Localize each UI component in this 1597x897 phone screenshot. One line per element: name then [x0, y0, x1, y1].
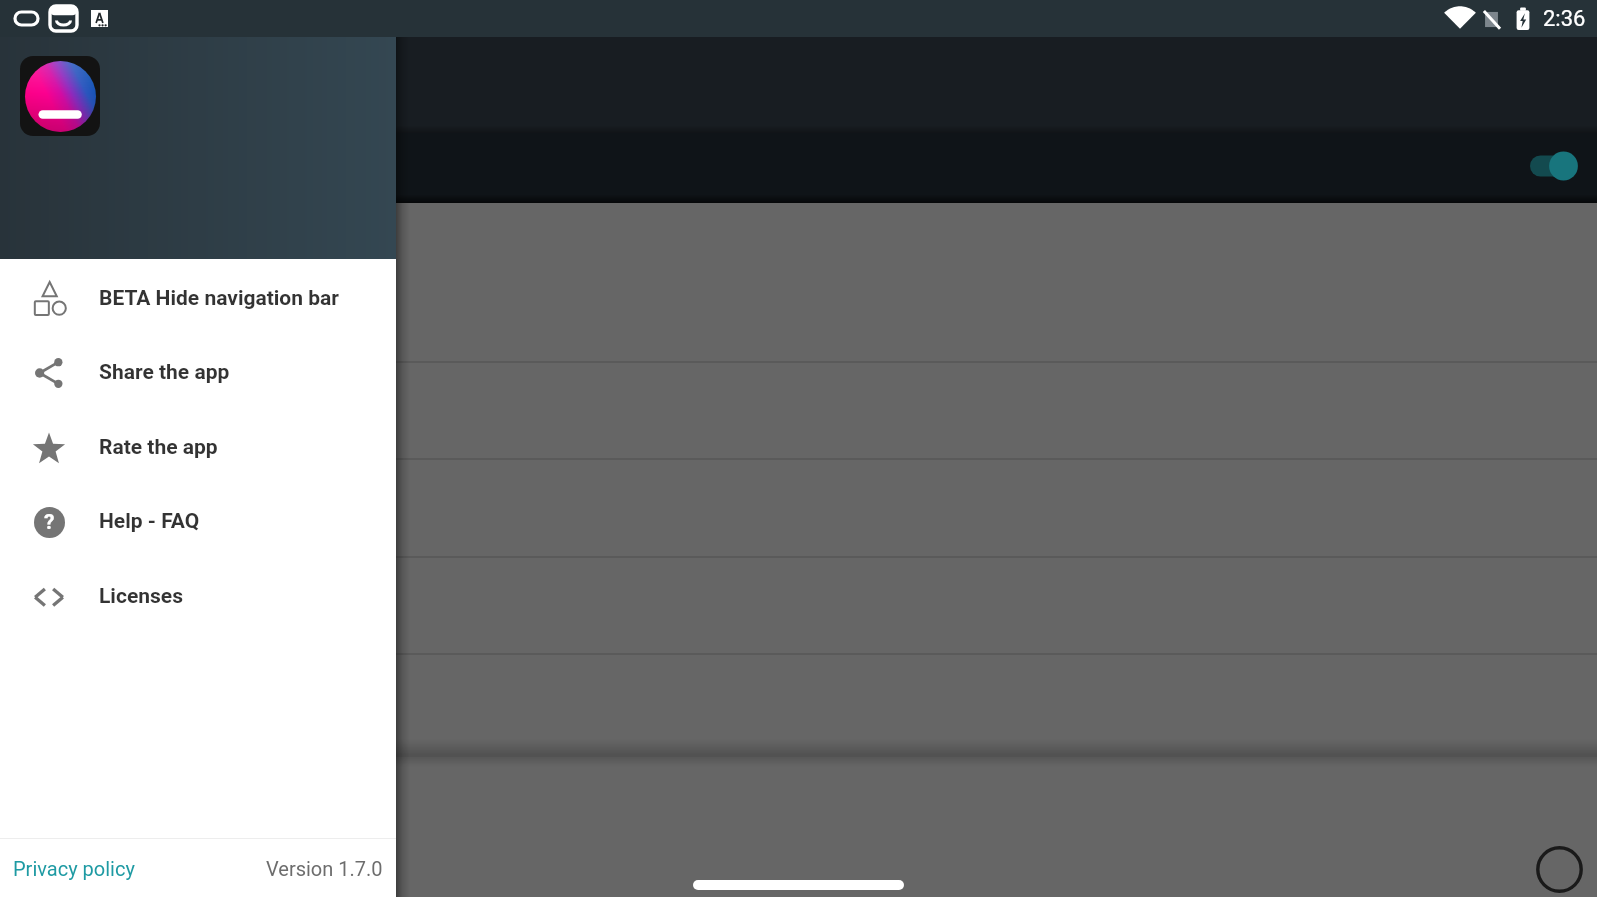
button[interactable]: Enable accessibility service	[1504, 144, 1570, 188]
staticText: Version 1.7.0	[266, 857, 383, 880]
button[interactable]: Close navigation drawer	[0, 0, 1597, 897]
button[interactable]: Share the app	[0, 335, 396, 410]
staticText: Share the app	[99, 360, 230, 385]
staticText: 2:36	[1543, 6, 1586, 32]
button[interactable]: BETA Hide navigation bar	[0, 261, 396, 336]
staticText: Privacy policy	[13, 857, 135, 880]
staticText: ?	[44, 510, 55, 535]
staticText: Rate the app	[99, 435, 218, 460]
staticText: BETA Hide navigation bar	[99, 286, 339, 311]
button[interactable]: ?	[0, 484, 396, 559]
button[interactable]: Licenses	[0, 559, 396, 634]
staticText: Licenses	[99, 584, 183, 609]
button[interactable]: Privacy policy	[0, 849, 143, 888]
staticText: Help - FAQ	[99, 509, 200, 534]
button[interactable]: Rate the app	[0, 410, 396, 485]
button[interactable]: Accessibility button	[1536, 846, 1583, 893]
